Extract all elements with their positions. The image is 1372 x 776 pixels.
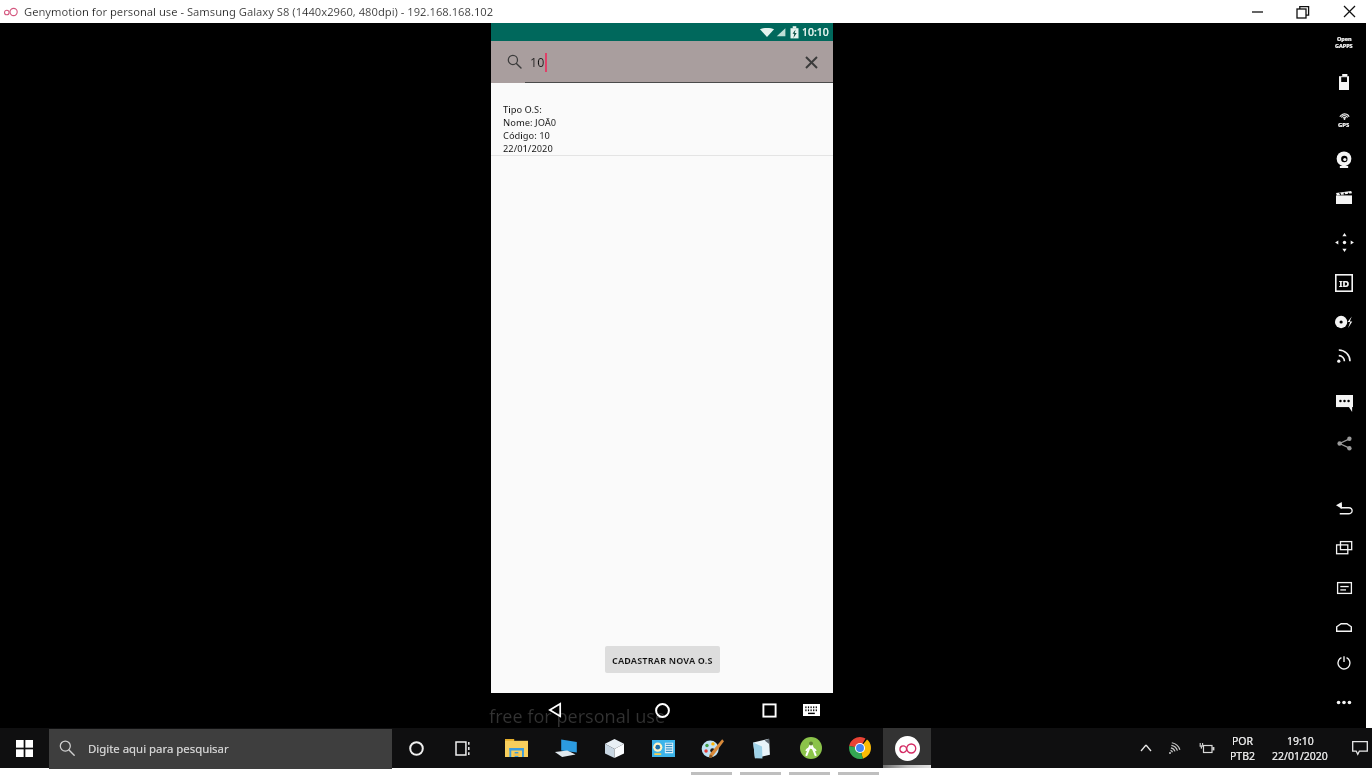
button[interactable]: Screen recorder [1324,181,1364,213]
staticText: PTB2 [1230,749,1256,763]
staticText: Tipo O.S: [503,103,542,116]
button[interactable]: CADASTRAR NOVA O.S [605,646,720,673]
button[interactable]: Cortana [392,728,440,768]
button[interactable]: Genymotion [883,728,931,768]
button[interactable]: Show hidden icons [1132,728,1160,768]
staticText: 19:10 [1287,734,1314,748]
button[interactable]: Recents [756,697,782,723]
button[interactable]: Phone [1324,387,1364,419]
button[interactable]: Network [1160,728,1190,768]
button[interactable]: Back [542,697,568,723]
button[interactable]: Outlook [639,728,688,768]
staticText: POR [1232,734,1254,748]
button[interactable]: Identifiers [1324,267,1364,299]
staticText: Genymotion for personal use - Samsung Ga… [24,4,494,19]
button[interactable]: Minimize [1234,0,1280,23]
staticText: free for personal use [489,704,666,729]
staticText: Nome: JOÃ0 [503,116,557,129]
button[interactable]: Disk IO [1324,306,1364,338]
button[interactable]: Network [1324,340,1364,372]
button[interactable]: Close [1326,0,1372,23]
button[interactable]: Camera [1324,143,1364,175]
button[interactable]: Home [1324,611,1364,643]
staticText: Código: 10 [503,129,550,142]
staticText: Open [1337,35,1352,42]
button[interactable]: Paint [688,728,737,768]
button[interactable]: Open GAPPS [1324,26,1364,58]
button[interactable]: File Explorer [492,728,541,768]
button[interactable]: Menu [1324,572,1364,604]
button[interactable]: Tipo O.S: [491,83,833,155]
staticText: 10:10 [802,25,829,39]
button[interactable]: Recents [1324,531,1364,563]
staticText: CADASTRAR NOVA O.S [612,654,713,666]
button[interactable]: Chrome [835,728,884,768]
button[interactable]: More [1324,686,1364,718]
button[interactable]: Action Center [1342,728,1372,768]
staticText: ID [1339,277,1350,289]
button[interactable]: Battery charging [1190,728,1222,768]
button[interactable]: VirtualBox [590,728,639,768]
button[interactable]: Share [1324,427,1364,459]
button[interactable]: Battery [1324,66,1364,98]
staticText: Digite aqui para pesquisar [88,741,229,757]
button[interactable]: Power [1324,647,1364,679]
button[interactable]: Android Studio [786,728,835,768]
staticText: GPS [1338,121,1350,129]
button[interactable]: Home [649,697,675,723]
button[interactable]: Digite aqui para pesquisar [49,729,392,769]
staticText: 22/01/2020 [1272,749,1328,763]
button[interactable]: Remote Desktop [541,728,590,768]
button[interactable]: Task View [440,728,488,768]
button[interactable]: Back [1324,492,1364,524]
button[interactable]: Restore [1280,0,1326,23]
button[interactable]: GPS [1324,105,1364,137]
button[interactable]: Clear search [796,47,826,77]
button[interactable]: Keyboard [798,697,824,723]
button[interactable]: Sensors [1324,226,1364,258]
staticText: 10 [530,54,545,71]
button[interactable]: Sticky Notes [737,728,786,768]
button[interactable]: Search [502,49,528,75]
staticText: 22/01/2020 [503,142,553,155]
staticText: GAPPS [1335,42,1353,49]
button[interactable]: Start [0,728,48,768]
